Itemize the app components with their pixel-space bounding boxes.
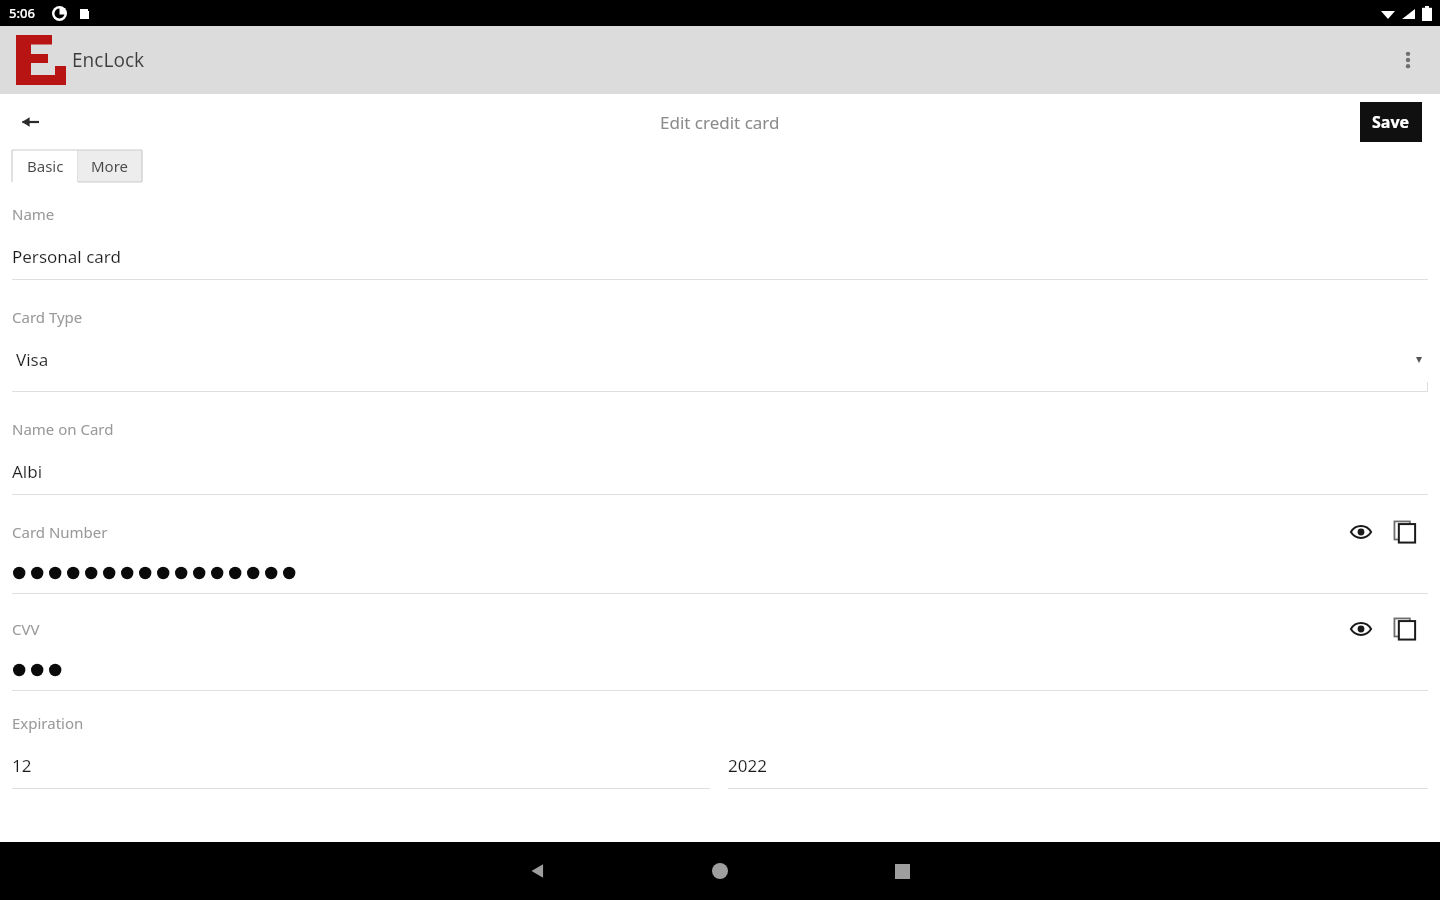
button[interactable]: Recent apps — [878, 847, 926, 895]
staticText: Personal card — [12, 245, 122, 268]
button[interactable]: Back — [8, 100, 52, 144]
staticText: CVV — [12, 619, 40, 639]
staticText: Expiration — [12, 713, 84, 733]
button[interactable]: Name on Card — [0, 419, 1440, 495]
staticText: Visa — [16, 348, 49, 371]
staticText: Albi — [12, 460, 43, 483]
button[interactable]: Copy Card Number — [1386, 519, 1424, 545]
button[interactable]: Home — [696, 847, 744, 895]
button[interactable]: Save — [1360, 102, 1422, 142]
staticText: Card Number — [12, 522, 108, 542]
button[interactable]: Show CVV — [1342, 616, 1380, 642]
staticText: EncLock — [72, 47, 145, 73]
staticText: Edit credit card — [660, 111, 780, 134]
button[interactable]: Copy CVV — [1386, 616, 1424, 642]
staticText: 2022 — [728, 754, 767, 777]
staticText: 12 — [12, 754, 32, 777]
staticText: 5:06 — [9, 4, 35, 22]
staticText: Basic — [27, 156, 64, 176]
staticText: Name on Card — [12, 419, 114, 439]
button[interactable]: Show Card Number — [1342, 519, 1380, 545]
staticText: Save — [1372, 111, 1410, 133]
button[interactable]: Card Type — [0, 307, 1440, 392]
staticText: Card Type — [12, 307, 83, 327]
button[interactable]: 2022 — [720, 754, 1440, 789]
staticText: Name — [12, 204, 55, 224]
button[interactable]: Name — [0, 204, 1440, 280]
button[interactable]: More — [78, 150, 142, 182]
button[interactable]: 12 — [0, 754, 720, 789]
button[interactable]: Back — [514, 847, 562, 895]
button[interactable]: Basic — [12, 150, 78, 182]
staticText: More — [91, 156, 129, 176]
button[interactable]: More options — [1384, 36, 1432, 84]
